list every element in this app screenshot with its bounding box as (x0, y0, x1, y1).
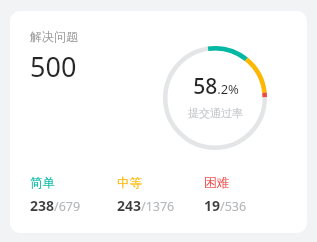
staticText: 提交通过率 (188, 106, 243, 120)
button[interactable]: 解决问题 (10, 11, 307, 233)
staticText: 19/536 (204, 196, 247, 215)
staticText: 238/679 (30, 196, 81, 215)
staticText: 58.2% (193, 72, 239, 101)
staticText: 500 (30, 48, 77, 85)
staticText: 简单 (30, 175, 55, 191)
staticText: 中等 (117, 175, 142, 191)
staticText: 243/1376 (117, 196, 175, 215)
button[interactable]: 困难 (204, 175, 291, 215)
staticText: 困难 (204, 175, 229, 191)
staticText: 解决问题 (30, 29, 78, 44)
button[interactable]: 简单 (30, 175, 117, 215)
button[interactable]: 中等 (117, 175, 204, 215)
